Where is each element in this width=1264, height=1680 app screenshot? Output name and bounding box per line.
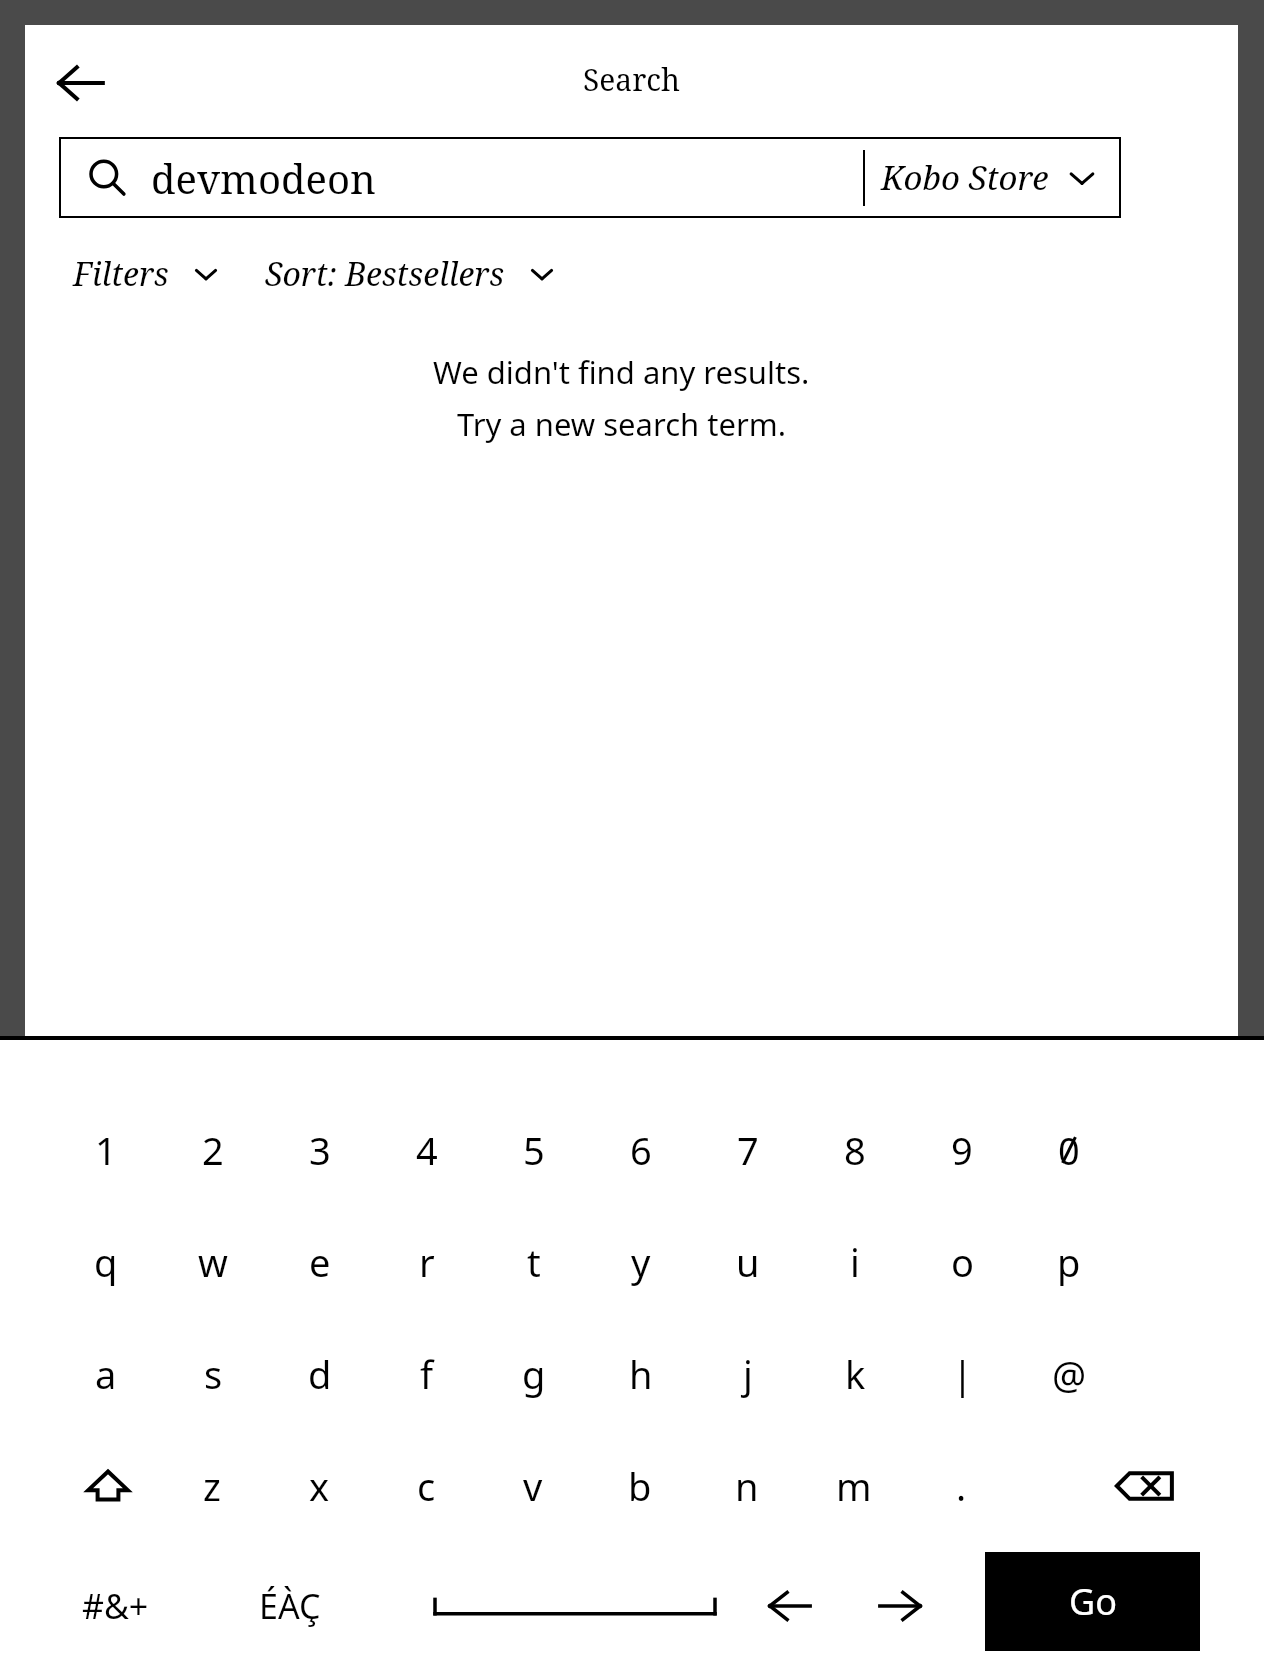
button[interactable]: Shift bbox=[58, 1448, 158, 1524]
button[interactable]: d bbox=[267, 1336, 373, 1412]
button[interactable]: a bbox=[53, 1336, 159, 1412]
button[interactable]: ÉÀÇ bbox=[230, 1570, 350, 1642]
staticText: r bbox=[419, 1236, 435, 1288]
staticText: @ bbox=[1052, 1348, 1087, 1400]
staticText: 2 bbox=[202, 1124, 224, 1176]
button[interactable]: t bbox=[481, 1224, 587, 1300]
button[interactable]: 8 bbox=[802, 1112, 908, 1188]
staticText: k bbox=[845, 1348, 866, 1400]
button[interactable]: 7 bbox=[695, 1112, 801, 1188]
button[interactable]: z bbox=[162, 1448, 262, 1524]
button[interactable]: Space bbox=[420, 1560, 730, 1650]
button[interactable]: h bbox=[588, 1336, 694, 1412]
button[interactable]: u bbox=[695, 1224, 801, 1300]
staticText: 6 bbox=[630, 1124, 652, 1176]
staticText: a bbox=[95, 1348, 117, 1400]
button[interactable]: w bbox=[160, 1224, 266, 1300]
button[interactable]: c bbox=[376, 1448, 476, 1524]
button[interactable]: e bbox=[267, 1224, 373, 1300]
button[interactable]: m bbox=[804, 1448, 904, 1524]
button[interactable]: Back bbox=[37, 39, 125, 127]
staticText: Go bbox=[1069, 1577, 1117, 1626]
button[interactable]: Filters bbox=[73, 252, 221, 296]
staticText: devmodeon bbox=[151, 151, 376, 205]
staticText: q bbox=[94, 1236, 118, 1288]
staticText: | bbox=[952, 1348, 973, 1400]
staticText: t bbox=[527, 1236, 541, 1288]
button[interactable]: i bbox=[802, 1224, 908, 1300]
button[interactable]: Go bbox=[985, 1552, 1200, 1651]
button[interactable]: n bbox=[697, 1448, 797, 1524]
button[interactable]: Backspace bbox=[1095, 1448, 1195, 1524]
button[interactable]: x bbox=[269, 1448, 369, 1524]
button[interactable]: 0 bbox=[1016, 1112, 1122, 1188]
button[interactable]: 1 bbox=[53, 1112, 159, 1188]
staticText: Filters bbox=[73, 252, 169, 296]
button[interactable]: 2 bbox=[160, 1112, 266, 1188]
staticText: 7 bbox=[737, 1124, 759, 1176]
staticText: 3 bbox=[309, 1124, 331, 1176]
button[interactable]: g bbox=[481, 1336, 587, 1412]
button[interactable]: k bbox=[802, 1336, 908, 1412]
staticText: g bbox=[522, 1348, 546, 1400]
staticText: d bbox=[308, 1348, 332, 1400]
button[interactable]: Sort: Bestsellers bbox=[265, 252, 557, 296]
staticText: 8 bbox=[844, 1124, 866, 1176]
button[interactable]: 4 bbox=[374, 1112, 480, 1188]
button[interactable]: y bbox=[588, 1224, 694, 1300]
button[interactable]: 5 bbox=[481, 1112, 587, 1188]
staticText: x bbox=[309, 1460, 330, 1512]
staticText: s bbox=[204, 1348, 223, 1400]
button[interactable]: #&+ bbox=[60, 1570, 170, 1642]
staticText: 5 bbox=[523, 1124, 545, 1176]
button[interactable]: p bbox=[1016, 1224, 1122, 1300]
staticText: Kobo Store bbox=[881, 155, 1049, 200]
staticText: We didn't find any results. bbox=[433, 351, 810, 393]
staticText: w bbox=[198, 1236, 228, 1288]
staticText: v bbox=[523, 1460, 543, 1512]
button[interactable]: . bbox=[911, 1448, 1011, 1524]
staticText: 4 bbox=[416, 1124, 438, 1176]
staticText: Search bbox=[25, 59, 1238, 100]
button[interactable]: @ bbox=[1016, 1336, 1122, 1412]
staticText: . bbox=[956, 1460, 967, 1512]
button[interactable]: o bbox=[909, 1224, 1015, 1300]
button[interactable]: Move cursor left bbox=[745, 1570, 835, 1642]
staticText: 9 bbox=[951, 1124, 973, 1176]
staticText: n bbox=[735, 1460, 759, 1512]
button[interactable]: 6 bbox=[588, 1112, 694, 1188]
button[interactable]: b bbox=[590, 1448, 690, 1524]
staticText: #&+ bbox=[82, 1583, 149, 1629]
staticText: i bbox=[850, 1236, 860, 1288]
staticText: o bbox=[951, 1236, 974, 1288]
staticText: f bbox=[420, 1348, 434, 1400]
staticText: 0 bbox=[1058, 1124, 1080, 1176]
staticText: c bbox=[417, 1460, 436, 1512]
staticText: Try a new search term. bbox=[457, 403, 787, 445]
staticText: j bbox=[743, 1348, 753, 1400]
staticText: m bbox=[836, 1460, 872, 1512]
button[interactable]: v bbox=[483, 1448, 583, 1524]
button[interactable]: f bbox=[374, 1336, 480, 1412]
staticText: z bbox=[203, 1460, 221, 1512]
staticText: y bbox=[631, 1236, 651, 1288]
button[interactable]: | bbox=[909, 1336, 1015, 1412]
staticText: 1 bbox=[95, 1124, 117, 1176]
button[interactable]: devmodeon bbox=[59, 137, 1121, 218]
staticText: b bbox=[628, 1460, 652, 1512]
staticText: u bbox=[736, 1236, 760, 1288]
staticText: p bbox=[1057, 1236, 1081, 1288]
button[interactable]: 3 bbox=[267, 1112, 373, 1188]
button[interactable]: Move cursor right bbox=[855, 1570, 945, 1642]
button[interactable]: q bbox=[53, 1224, 159, 1300]
button[interactable]: j bbox=[695, 1336, 801, 1412]
button[interactable]: 9 bbox=[909, 1112, 1015, 1188]
staticText: e bbox=[309, 1236, 331, 1288]
staticText: h bbox=[629, 1348, 653, 1400]
button[interactable]: r bbox=[374, 1224, 480, 1300]
button[interactable]: s bbox=[160, 1336, 266, 1412]
staticText: ÉÀÇ bbox=[259, 1583, 321, 1629]
staticText: Sort: Bestsellers bbox=[265, 252, 505, 296]
